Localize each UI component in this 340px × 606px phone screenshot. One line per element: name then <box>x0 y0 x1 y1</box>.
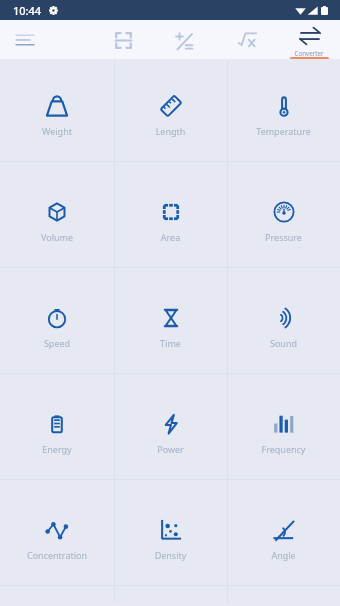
button[interactable]: Power <box>114 374 227 479</box>
staticText: 10:44 <box>13 3 42 18</box>
button[interactable]: Angle <box>227 480 340 585</box>
staticText: Weight <box>0 125 114 137</box>
button[interactable]: Calculator <box>166 20 203 59</box>
button[interactable]: Area <box>114 162 227 267</box>
staticText: Volume <box>0 231 114 243</box>
button[interactable]: Energy <box>0 374 114 479</box>
button[interactable]: Temperature <box>227 59 340 161</box>
staticText: Energy <box>0 443 114 455</box>
staticText: Area <box>114 231 227 243</box>
button[interactable]: Menu <box>3 20 47 59</box>
staticText: Power <box>114 443 227 455</box>
button[interactable]: Pressure <box>227 162 340 267</box>
staticText: Pressure <box>227 231 340 243</box>
staticText: Temperature <box>227 125 340 137</box>
button[interactable]: Square root <box>229 20 265 59</box>
staticText: Angle <box>227 549 340 561</box>
staticText: Density <box>114 549 227 561</box>
staticText: Concentration <box>0 549 114 561</box>
button[interactable]: Volume <box>0 162 114 267</box>
button[interactable]: Frequency <box>227 374 340 479</box>
button[interactable]: Weight <box>0 59 114 161</box>
button[interactable]: Density <box>114 480 227 585</box>
button[interactable]: Time <box>114 268 227 373</box>
button[interactable]: Concentration <box>0 480 114 585</box>
staticText: Sound <box>227 337 340 349</box>
button[interactable]: Speed <box>0 268 114 373</box>
button[interactable]: Length <box>114 59 227 161</box>
button[interactable]: Sound <box>227 268 340 373</box>
button[interactable]: Scan <box>105 20 141 59</box>
staticText: Converter <box>285 49 333 57</box>
staticText: Time <box>114 337 227 349</box>
button[interactable]: Converter <box>285 20 333 59</box>
staticText: Frequency <box>227 443 340 455</box>
staticText: Speed <box>0 337 114 349</box>
staticText: Length <box>114 125 227 137</box>
